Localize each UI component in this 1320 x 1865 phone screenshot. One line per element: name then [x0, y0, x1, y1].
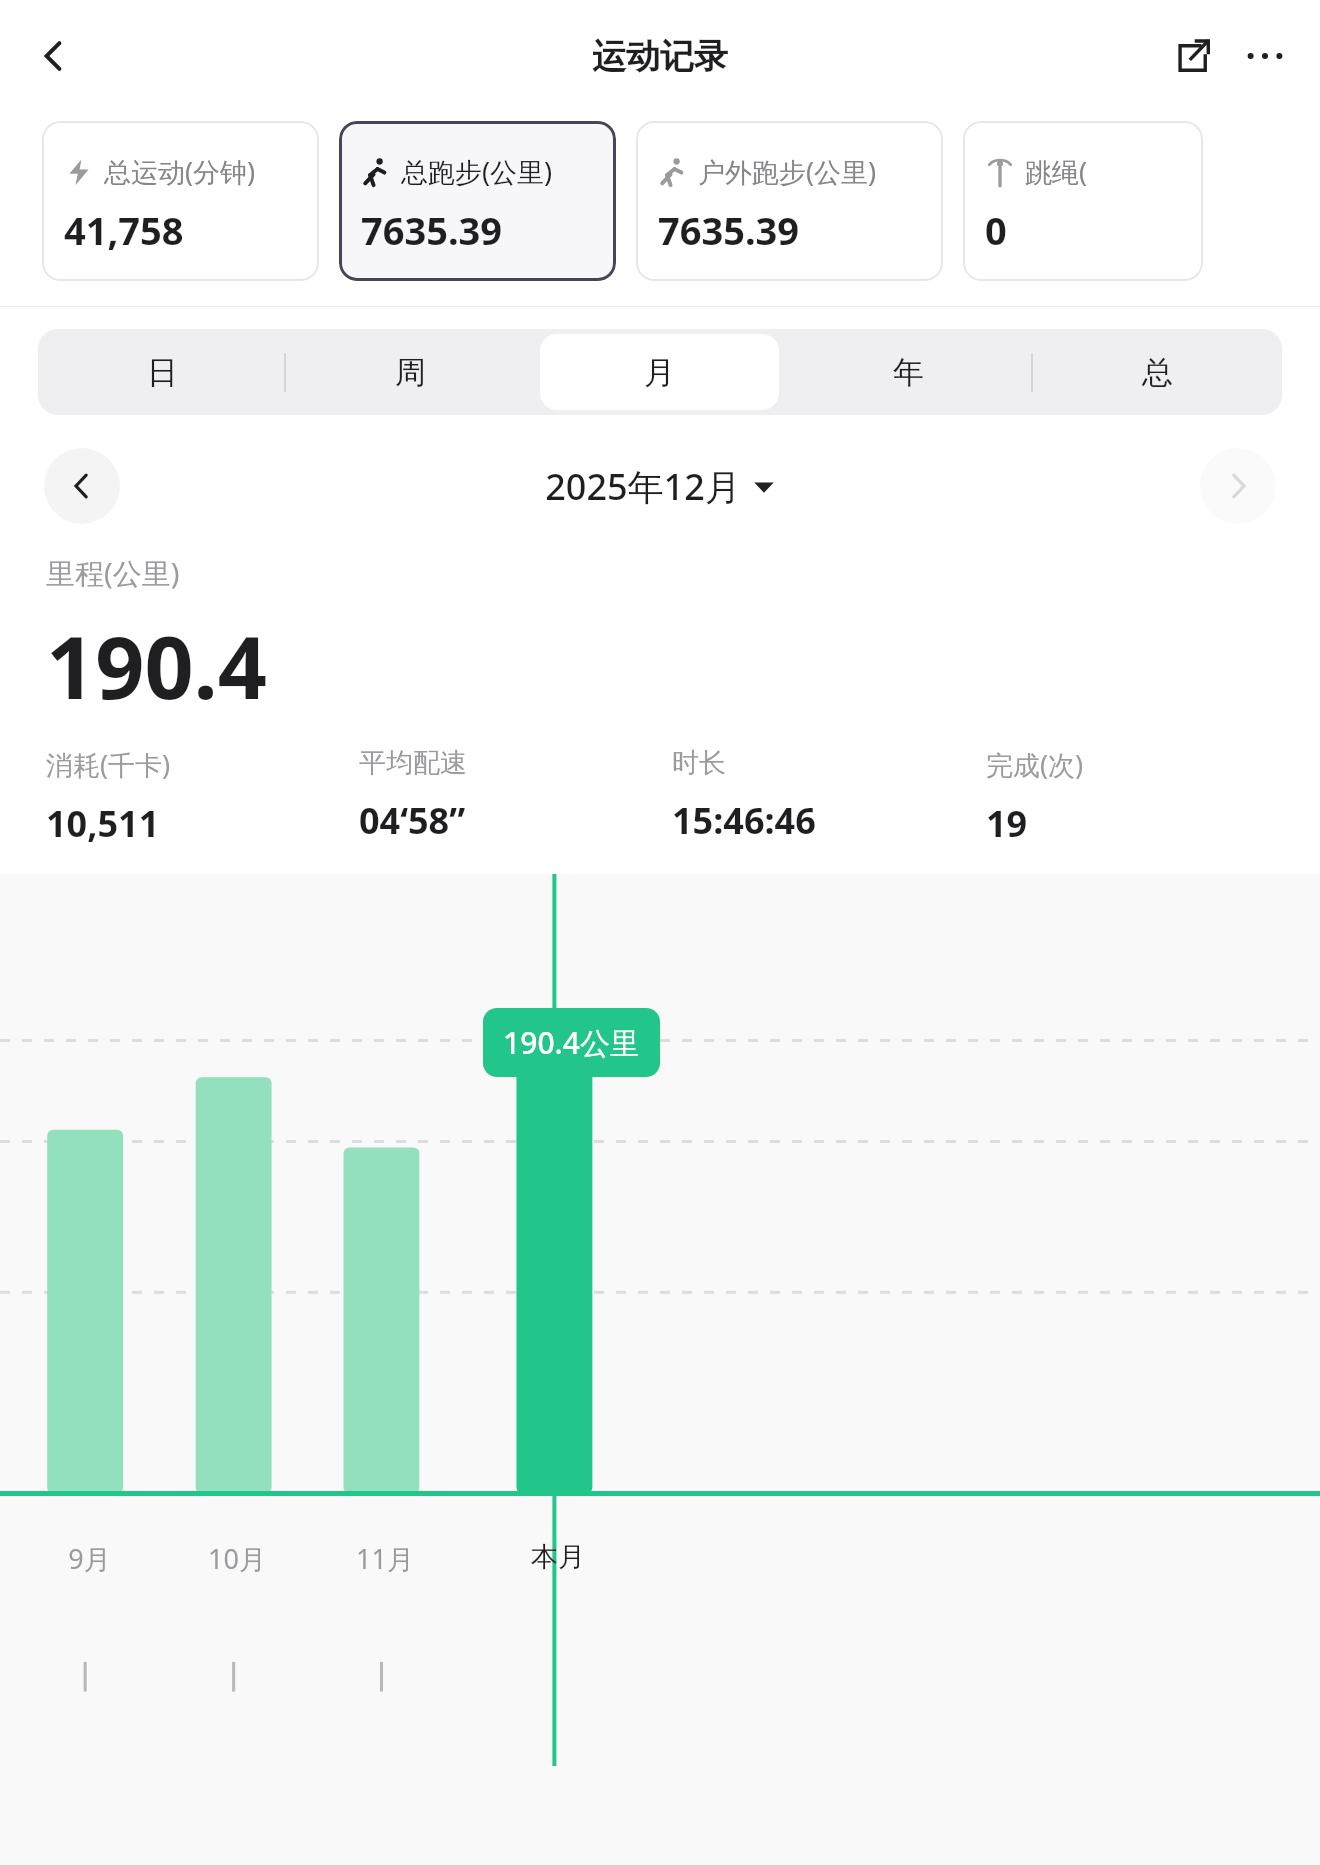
button[interactable]: 总	[1038, 334, 1277, 410]
button[interactable]: More options	[1236, 27, 1294, 85]
staticText: 周	[395, 353, 426, 392]
staticText: 日	[147, 353, 178, 392]
button[interactable]: Previous month	[44, 448, 120, 524]
staticText: 04‘58”	[359, 796, 466, 845]
staticText: 年	[893, 353, 924, 392]
button[interactable]: 年	[789, 334, 1028, 410]
staticText: 消耗(千卡)	[46, 746, 171, 783]
button[interactable]: 周	[291, 334, 530, 410]
button[interactable]: 月	[540, 334, 779, 410]
button[interactable]: 2025年12月	[545, 462, 775, 511]
button[interactable]: 总运动(分钟)	[42, 121, 319, 281]
staticText: 总运动(分钟)	[104, 153, 256, 190]
staticText: 7635.39	[361, 204, 503, 256]
staticText: 月	[644, 353, 675, 392]
staticText: 里程(公里)	[46, 553, 180, 593]
staticText: 总	[1142, 353, 1173, 392]
staticText: 0	[985, 204, 1007, 256]
staticText: 运动记录	[592, 35, 728, 78]
staticText: 完成(次)	[986, 746, 1084, 783]
staticText: 41,758	[64, 204, 184, 256]
staticText: 跳绳(	[1025, 153, 1088, 190]
staticText: 19	[986, 799, 1028, 848]
staticText: 总跑步(公里)	[401, 153, 553, 190]
staticText: 190.4	[46, 607, 267, 724]
button[interactable]: Back	[26, 28, 82, 84]
staticText: 11月	[356, 1540, 414, 1577]
staticText: 户外跑步(公里)	[698, 153, 877, 190]
button[interactable]: 户外跑步(公里)	[636, 121, 943, 281]
staticText: 190.4公里	[503, 1022, 640, 1063]
staticText: 15:46:46	[672, 796, 816, 845]
staticText: 时长	[672, 746, 726, 780]
button[interactable]: 日	[43, 334, 281, 410]
staticText: 平均配速	[359, 746, 467, 780]
button[interactable]: Share	[1164, 27, 1222, 85]
button[interactable]: Next month	[1200, 448, 1276, 524]
staticText: 10月	[208, 1540, 266, 1577]
button[interactable]: 总跑步(公里)	[339, 121, 616, 281]
staticText: 2025年12月	[545, 462, 741, 511]
staticText: 10,511	[46, 799, 160, 848]
button[interactable]: 跳绳(	[963, 121, 1203, 281]
staticText: 9月	[68, 1540, 111, 1577]
staticText: 本月	[531, 1540, 585, 1574]
staticText: 7635.39	[658, 204, 800, 256]
